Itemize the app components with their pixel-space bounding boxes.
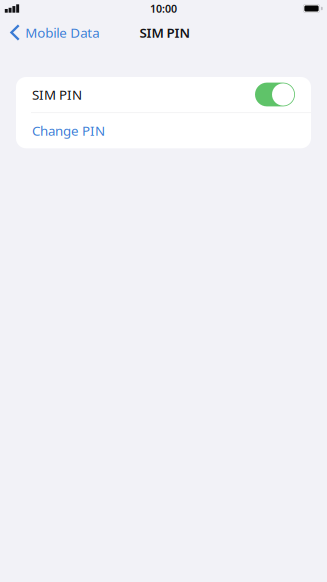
button[interactable]: Change PIN <box>16 113 311 148</box>
staticText: SIM PIN <box>139 24 190 41</box>
staticText: SIM PIN <box>32 86 82 103</box>
button[interactable]: SIM PIN <box>16 77 311 112</box>
staticText: Change PIN <box>32 122 105 139</box>
staticText: 10:00 <box>150 1 177 16</box>
staticText: Mobile Data <box>25 24 99 41</box>
button[interactable]: Back to Mobile Data <box>0 17 105 48</box>
